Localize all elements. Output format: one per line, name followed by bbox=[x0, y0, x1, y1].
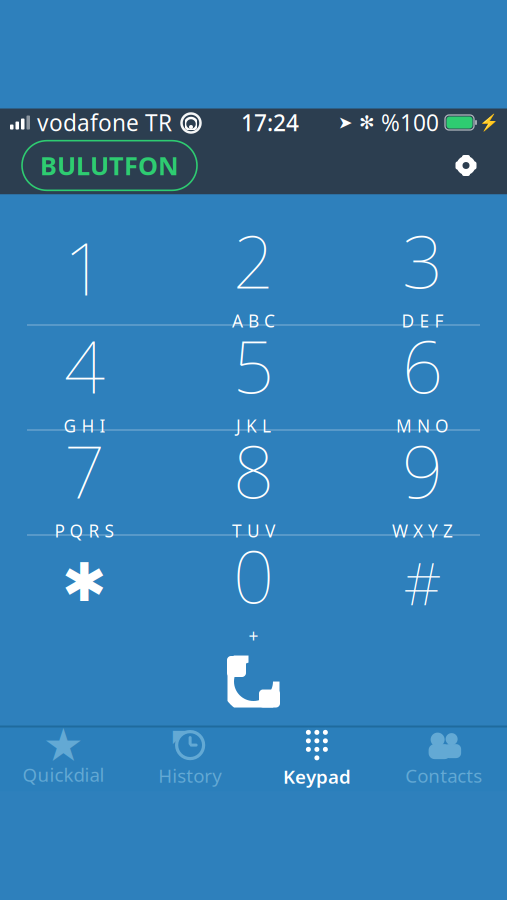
staticText: 3 bbox=[402, 213, 443, 308]
button[interactable]: 0 bbox=[169, 535, 338, 639]
staticText: 17:24 bbox=[241, 107, 299, 137]
staticText: BULUTFON bbox=[40, 149, 179, 182]
staticText: 2 bbox=[233, 213, 274, 308]
staticText: G H I bbox=[63, 414, 105, 437]
staticText: Quickdial bbox=[22, 762, 104, 787]
button[interactable]: 3 bbox=[338, 220, 507, 324]
staticText: 1 bbox=[64, 220, 105, 315]
staticText: ◤ bbox=[173, 726, 186, 746]
staticText: ✻ bbox=[359, 112, 375, 133]
button[interactable]: BULUTFON bbox=[22, 141, 197, 190]
button[interactable]: 4 bbox=[0, 325, 169, 429]
button[interactable]: Settings bbox=[445, 144, 487, 186]
button[interactable]: 7 bbox=[0, 430, 169, 534]
staticText: Keypad bbox=[283, 764, 351, 789]
button[interactable]: # bbox=[338, 535, 507, 639]
staticText: 7 bbox=[64, 423, 105, 518]
staticText: + bbox=[248, 624, 258, 647]
staticText: P Q R S bbox=[54, 519, 114, 542]
staticText: ⚡ bbox=[479, 113, 499, 132]
staticText: ➤ bbox=[338, 113, 353, 132]
staticText: History bbox=[158, 763, 222, 788]
staticText: T U V bbox=[232, 519, 275, 542]
staticText: D E F bbox=[401, 309, 443, 332]
staticText: J K L bbox=[236, 414, 271, 437]
staticText: # bbox=[403, 543, 441, 621]
button[interactable]: Call bbox=[198, 645, 308, 717]
button[interactable]: 8 bbox=[169, 430, 338, 534]
staticText: vodafone TR bbox=[37, 107, 172, 137]
button[interactable]: 5 bbox=[169, 325, 338, 429]
button[interactable]: 1 bbox=[0, 220, 169, 324]
staticText: M N O bbox=[396, 414, 449, 437]
button[interactable]: 2 bbox=[169, 220, 338, 324]
staticText: A B C bbox=[232, 309, 275, 332]
staticText: W X Y Z bbox=[392, 519, 453, 542]
staticText: 8 bbox=[233, 423, 274, 518]
button[interactable]: ★ bbox=[0, 725, 127, 791]
staticText: 9 bbox=[402, 423, 443, 518]
button[interactable]: Contacts bbox=[380, 725, 507, 791]
staticText: ★ bbox=[43, 719, 84, 771]
staticText: 0 bbox=[233, 528, 274, 623]
button[interactable]: 6 bbox=[338, 325, 507, 429]
staticText: ✱ bbox=[62, 552, 107, 613]
staticText: 5 bbox=[233, 318, 274, 413]
staticText: Contacts bbox=[405, 763, 482, 788]
button[interactable]: 9 bbox=[338, 430, 507, 534]
staticText: %100 bbox=[381, 107, 439, 137]
button[interactable]: ✱ bbox=[0, 535, 169, 639]
staticText: 6 bbox=[402, 318, 443, 413]
button[interactable]: Keypad bbox=[253, 725, 380, 791]
button[interactable]: ◤ bbox=[127, 725, 254, 791]
staticText: 4 bbox=[64, 318, 105, 413]
